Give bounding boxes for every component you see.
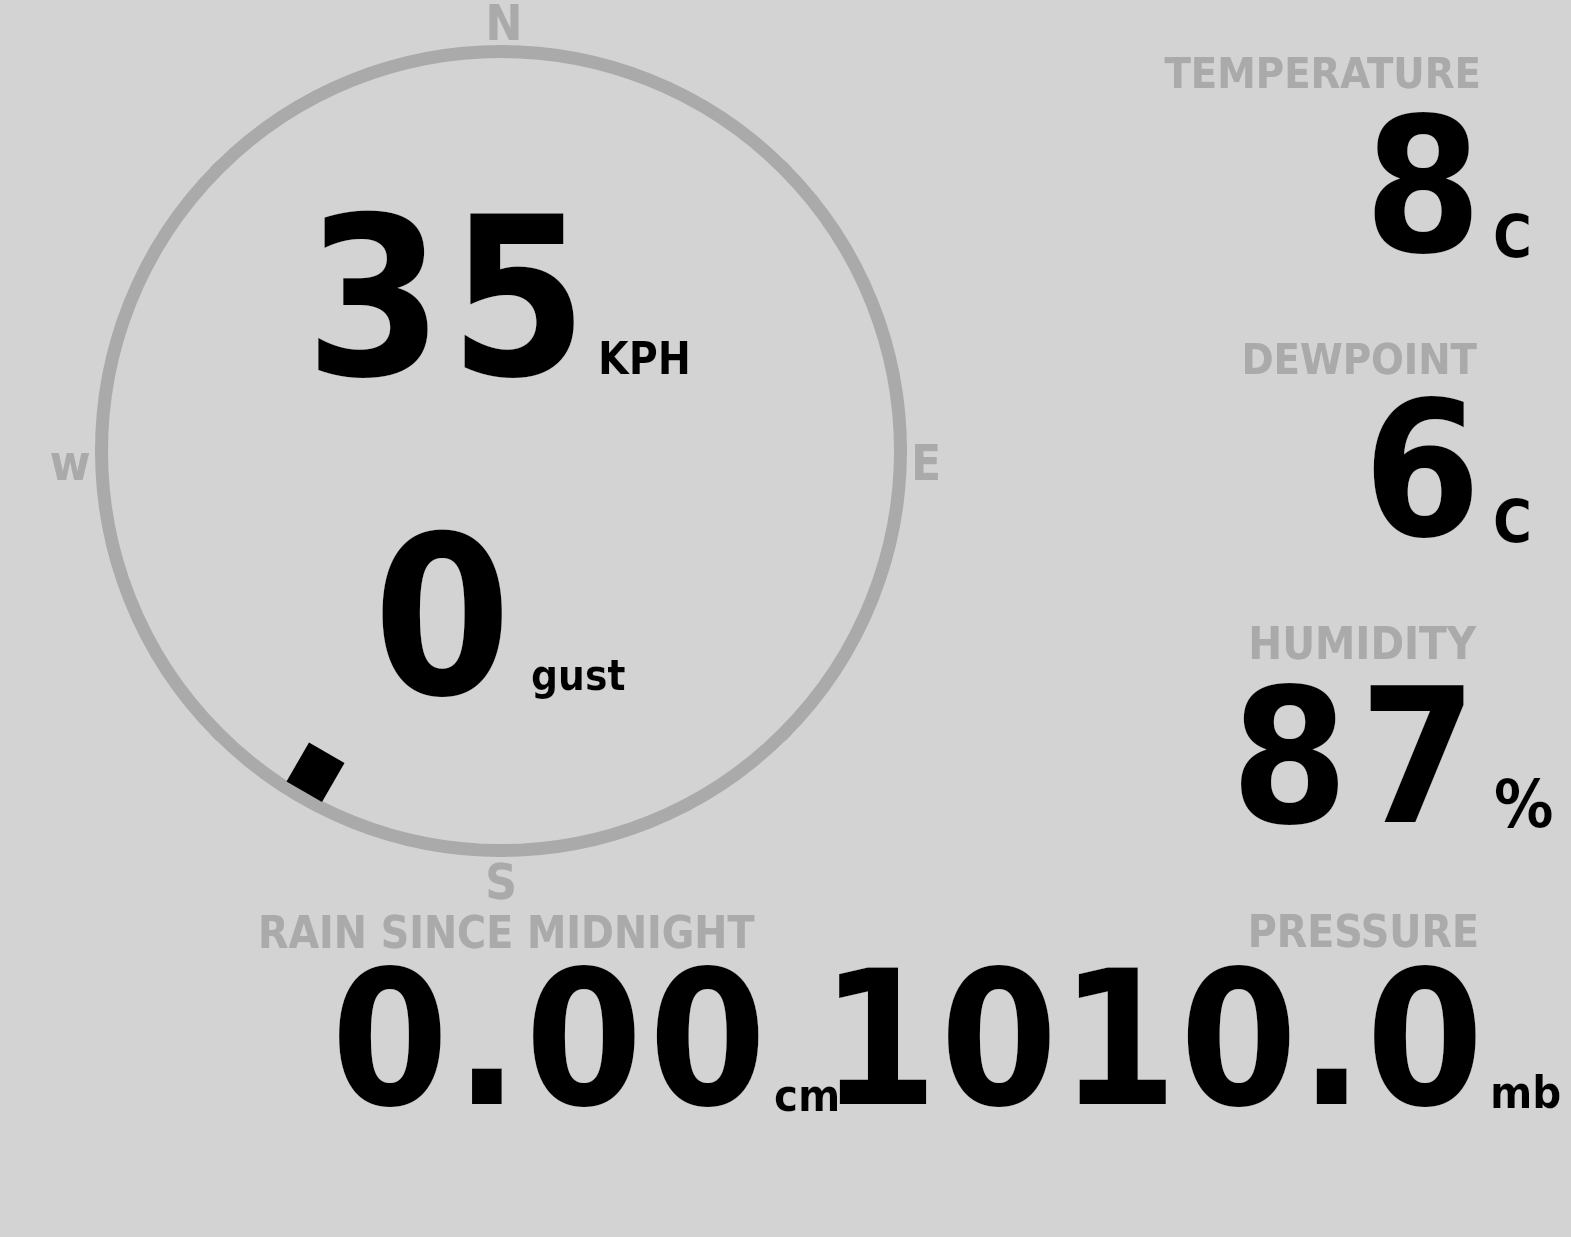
staticText: C bbox=[1493, 202, 1571, 302]
button[interactable]: Humidity 87 percent bbox=[1000, 595, 1571, 865]
staticText: w bbox=[30, 435, 110, 518]
staticText: % bbox=[1494, 766, 1571, 878]
staticText: mb bbox=[1490, 1066, 1571, 1143]
button[interactable]: Rain since midnight 0.00 cm bbox=[250, 895, 850, 1125]
staticText: PRESSURE bbox=[0, 906, 1479, 981]
button[interactable]: Wind speed and direction bbox=[60, 20, 960, 900]
staticText: 0 bbox=[373, 489, 1571, 865]
staticText: gust bbox=[531, 651, 1571, 722]
staticText: 1010.0 bbox=[820, 929, 1571, 1237]
staticText: 6 bbox=[0, 360, 1481, 680]
button[interactable]: Dewpoint 6 degrees Celsius bbox=[1000, 300, 1571, 580]
staticText: S bbox=[461, 854, 541, 937]
staticText: 87 bbox=[0, 647, 1488, 967]
staticText: 8 bbox=[0, 76, 1482, 396]
button[interactable]: Temperature 8 degrees Celsius bbox=[1000, 30, 1571, 280]
staticText: KPH bbox=[598, 333, 1571, 408]
staticText: RAIN SINCE MIDNIGHT bbox=[258, 907, 1571, 982]
staticText: 0.00 bbox=[331, 929, 1571, 1237]
staticText: HUMIDITY bbox=[0, 617, 1476, 694]
staticText: C bbox=[1493, 487, 1571, 587]
staticText: E bbox=[886, 435, 966, 518]
staticText: N bbox=[464, 0, 544, 78]
staticText: 35 bbox=[305, 170, 1571, 546]
staticText: DEWPOINT bbox=[0, 334, 1477, 407]
staticText: TEMPERATURE bbox=[0, 48, 1481, 121]
staticText: cm bbox=[774, 1069, 1571, 1146]
button[interactable]: Pressure 1010.0 mb bbox=[860, 895, 1571, 1125]
